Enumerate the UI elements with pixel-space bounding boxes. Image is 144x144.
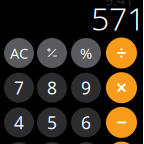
button[interactable]: Plus Minus [37,38,67,68]
button[interactable]: 8 [37,73,67,103]
button[interactable]: 6 [71,107,101,137]
staticText: % [80,43,92,63]
button[interactable]: Subtract [106,107,137,138]
button[interactable]: Add [106,142,137,144]
staticText: 9:41 [105,0,133,10]
staticText: 9 [81,76,91,99]
button[interactable]: 5 [37,107,67,137]
staticText: 4 [14,111,24,134]
button[interactable]: 2 [37,142,67,144]
button[interactable]: 3 [71,142,101,144]
button[interactable]: 1 [4,142,34,144]
button[interactable]: AC [4,38,34,68]
button[interactable]: 9 [71,73,101,103]
button[interactable]: 7 [4,73,34,103]
staticText: 8 [47,76,57,99]
button[interactable]: Divide [106,37,137,68]
staticText: 5 [47,111,57,134]
staticText: 7 [14,76,24,99]
staticText: 6 [81,111,91,134]
button[interactable]: Multiply [106,72,137,103]
staticText: AC [10,43,28,63]
staticText: 571 [91,0,144,39]
button[interactable]: 4 [4,107,34,137]
button[interactable]: % [71,38,101,68]
